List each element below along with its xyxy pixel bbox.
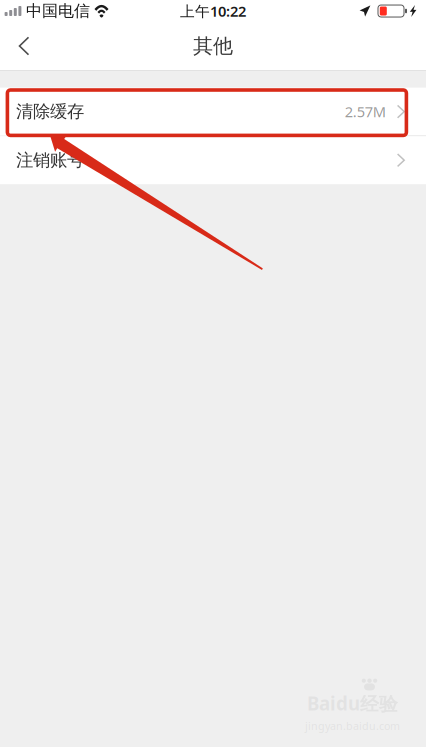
staticText: 注销账号 bbox=[16, 150, 84, 171]
staticText: 清除缓存 bbox=[16, 101, 84, 122]
staticText: 中国电信 bbox=[26, 1, 90, 21]
staticText: jingyan.baidu.com bbox=[305, 719, 400, 733]
button[interactable]: Back bbox=[0, 24, 48, 68]
button[interactable]: 清除缓存 bbox=[0, 88, 426, 136]
staticText: 其他 bbox=[193, 34, 233, 58]
staticText: 上午10:22 bbox=[180, 1, 246, 21]
staticText: Baidu经验 bbox=[307, 691, 398, 716]
button[interactable]: 注销账号 bbox=[0, 136, 426, 184]
staticText: 2.57M bbox=[345, 102, 386, 121]
